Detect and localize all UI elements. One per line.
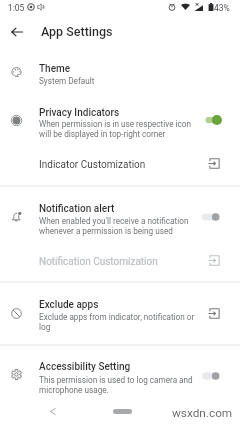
staticText: Indicator Customization xyxy=(39,159,146,171)
button[interactable]: Open exclude apps xyxy=(206,305,223,322)
staticText: When enabled you'll receive a notificati… xyxy=(39,216,198,236)
button[interactable]: Home xyxy=(105,403,139,419)
staticText: Theme xyxy=(39,63,71,75)
staticText: wsxdn.com xyxy=(172,406,233,420)
staticText: System Default xyxy=(39,76,95,86)
staticText: 1:05 xyxy=(8,3,25,13)
staticText: Accessibility Setting xyxy=(39,361,131,373)
staticText: When permission is in use respective ico… xyxy=(39,119,198,139)
button[interactable]: Indicator Customization xyxy=(0,153,240,175)
button[interactable]: Switch off xyxy=(201,370,227,382)
staticText: Exclude apps from indicator, notificatio… xyxy=(39,312,198,332)
staticText: Exclude apps xyxy=(39,299,99,311)
staticText: This permission is used to log camera an… xyxy=(39,375,198,395)
button[interactable]: Switch on xyxy=(201,114,227,126)
staticText: Notification Customization xyxy=(39,256,158,268)
staticText: 43% xyxy=(214,3,230,13)
button[interactable]: Back xyxy=(45,403,61,419)
staticText: Privacy Indicators xyxy=(39,107,120,119)
staticText: Notification alert xyxy=(39,203,115,215)
button[interactable]: Switch off xyxy=(201,211,227,223)
staticText: App Settings xyxy=(41,24,113,39)
button[interactable]: Back xyxy=(5,20,28,43)
button[interactable]: Notification Customization xyxy=(0,250,240,272)
